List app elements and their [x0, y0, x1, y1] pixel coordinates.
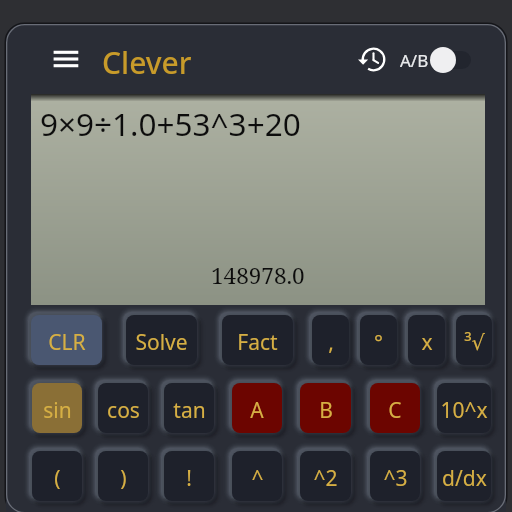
button[interactable]: ^: [232, 451, 282, 501]
button[interactable]: ³√: [456, 315, 492, 365]
staticText: ): [120, 464, 127, 493]
staticText: x: [421, 328, 433, 357]
staticText: d/dx: [442, 464, 487, 493]
staticText: ³√: [464, 328, 485, 357]
staticText: ^: [251, 464, 264, 493]
staticText: A/B: [400, 49, 429, 72]
staticText: 10^x: [440, 396, 488, 425]
button[interactable]: x: [408, 315, 445, 365]
button[interactable]: ,: [312, 315, 349, 365]
button[interactable]: °: [360, 315, 397, 365]
button[interactable]: Solve: [126, 315, 197, 365]
staticText: ,: [328, 328, 334, 357]
button[interactable]: ^3: [370, 451, 420, 501]
button[interactable]: Menu: [46, 39, 86, 79]
staticText: ^2: [313, 464, 338, 493]
staticText: 9×9÷1.0+53^3+20: [40, 102, 301, 145]
staticText: Solve: [135, 328, 188, 357]
staticText: tan: [173, 396, 206, 425]
button[interactable]: (: [32, 451, 82, 501]
staticText: B: [319, 396, 333, 425]
staticText: A: [250, 396, 264, 425]
staticText: Clever: [102, 42, 192, 83]
button[interactable]: !: [164, 451, 214, 501]
button[interactable]: A: [232, 383, 282, 433]
button[interactable]: tan: [164, 383, 214, 433]
staticText: sin: [43, 396, 72, 425]
button[interactable]: C: [370, 383, 420, 433]
button[interactable]: Fact: [222, 315, 293, 365]
button[interactable]: ^2: [300, 451, 351, 501]
button[interactable]: ): [98, 451, 148, 501]
button[interactable]: sin: [32, 383, 82, 433]
staticText: ^3: [383, 464, 408, 493]
button[interactable]: cos: [98, 383, 148, 433]
staticText: Fact: [237, 328, 278, 357]
button[interactable]: B: [300, 383, 351, 433]
button[interactable]: d/dx: [437, 451, 491, 501]
button[interactable]: 10^x: [437, 383, 491, 433]
staticText: °: [374, 328, 383, 357]
button[interactable]: A/B: [400, 42, 475, 78]
staticText: (: [54, 464, 61, 493]
staticText: !: [186, 464, 192, 493]
button[interactable]: History: [358, 44, 389, 75]
staticText: 148978.0: [211, 260, 305, 291]
button[interactable]: CLR: [31, 315, 102, 365]
staticText: cos: [107, 396, 140, 425]
staticText: C: [388, 396, 402, 425]
staticText: CLR: [48, 328, 86, 357]
